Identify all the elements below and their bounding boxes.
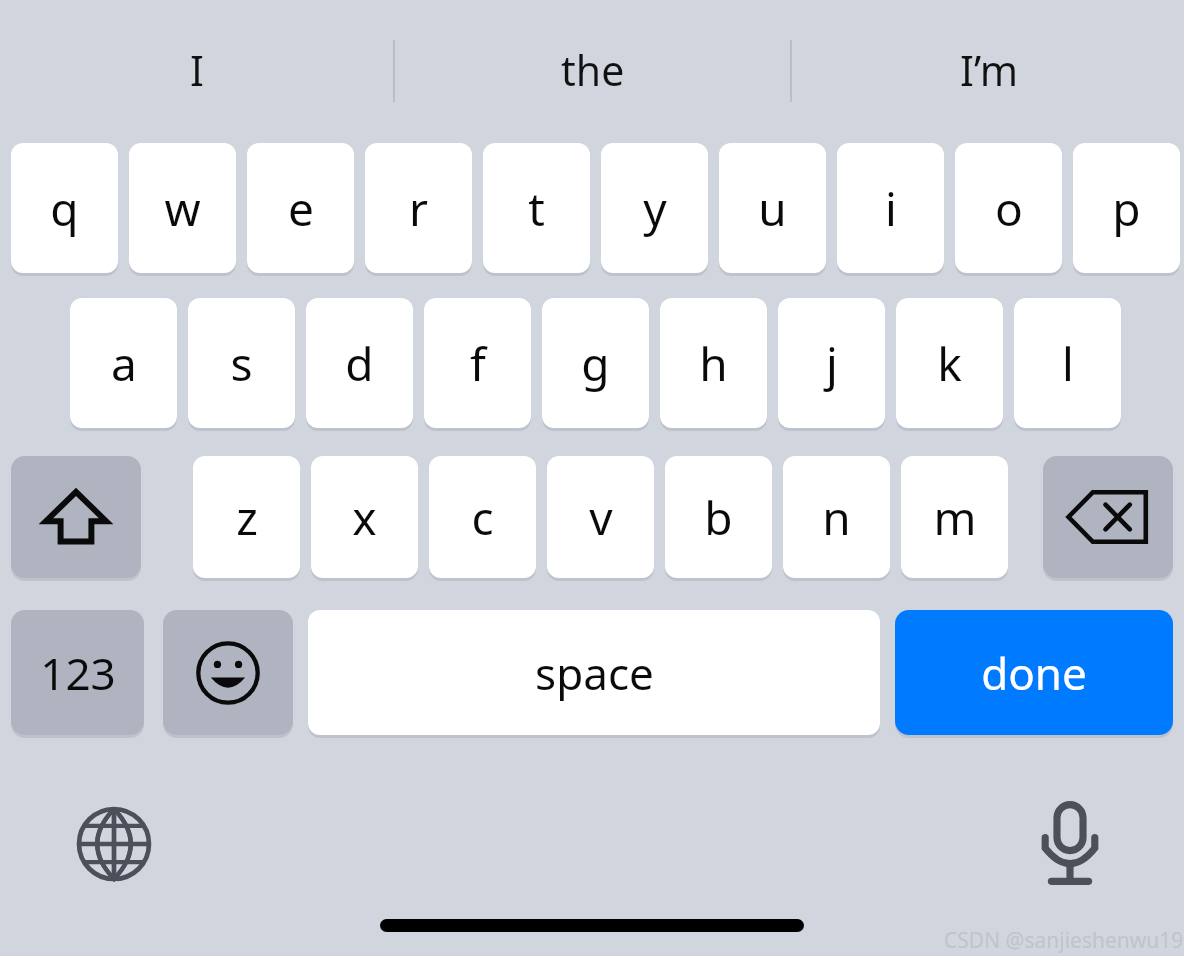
button[interactable]: t <box>483 143 590 273</box>
staticText: y <box>643 177 667 240</box>
staticText: f <box>470 332 486 395</box>
button[interactable]: z <box>193 456 300 578</box>
button[interactable]: space <box>308 610 880 735</box>
staticText: i <box>885 177 897 240</box>
staticText: v <box>589 486 613 549</box>
staticText: h <box>699 332 728 395</box>
staticText: 123 <box>40 643 116 703</box>
button[interactable]: Shift <box>11 456 141 578</box>
button[interactable]: j <box>778 298 885 428</box>
button[interactable]: d <box>306 298 413 428</box>
staticText: done <box>981 643 1087 703</box>
staticText: p <box>1112 177 1141 240</box>
button[interactable]: n <box>783 456 890 578</box>
staticText: b <box>704 486 733 549</box>
staticText: o <box>995 177 1023 240</box>
staticText: c <box>471 486 494 549</box>
staticText: z <box>236 486 258 549</box>
staticText: w <box>164 177 201 240</box>
button[interactable]: y <box>601 143 708 273</box>
staticText: CSDN @sanjieshenwu1987 <box>944 926 1184 955</box>
button[interactable]: b <box>665 456 772 578</box>
button[interactable]: o <box>955 143 1062 273</box>
staticText: n <box>822 486 851 549</box>
staticText: r <box>409 177 428 240</box>
button[interactable]: e <box>247 143 354 273</box>
button[interactable]: I <box>27 24 367 116</box>
button[interactable]: w <box>129 143 236 273</box>
button[interactable]: f <box>424 298 531 428</box>
button[interactable]: Backspace <box>1043 456 1173 578</box>
button[interactable]: g <box>542 298 649 428</box>
button[interactable]: Emoji <box>163 610 293 735</box>
staticText: q <box>50 177 79 240</box>
button[interactable]: q <box>11 143 118 273</box>
button[interactable]: v <box>547 456 654 578</box>
staticText: I <box>190 42 204 98</box>
staticText: the <box>561 42 625 98</box>
button[interactable]: l <box>1014 298 1121 428</box>
staticText: j <box>826 332 838 395</box>
button[interactable]: Switch keyboard <box>62 792 166 896</box>
button[interactable]: Dictation <box>1018 792 1122 896</box>
button[interactable]: done <box>895 610 1173 735</box>
button[interactable]: s <box>188 298 295 428</box>
button[interactable]: 123 <box>11 610 144 735</box>
button[interactable]: i <box>837 143 944 273</box>
staticText: u <box>758 177 787 240</box>
button[interactable]: x <box>311 456 418 578</box>
staticText: a <box>111 332 137 395</box>
staticText: I’m <box>960 42 1019 98</box>
staticText: d <box>345 332 374 395</box>
staticText: x <box>352 486 377 549</box>
staticText: l <box>1062 332 1074 395</box>
button[interactable]: u <box>719 143 826 273</box>
button[interactable]: c <box>429 456 536 578</box>
button[interactable]: I’m <box>819 24 1159 116</box>
staticText: space <box>535 643 654 703</box>
staticText: e <box>288 177 314 240</box>
staticText: k <box>937 332 962 395</box>
staticText: t <box>528 177 545 240</box>
staticText: s <box>230 332 253 395</box>
button[interactable]: k <box>896 298 1003 428</box>
staticText: g <box>581 332 610 395</box>
button[interactable]: p <box>1073 143 1180 273</box>
button[interactable]: h <box>660 298 767 428</box>
button[interactable]: the <box>423 24 763 116</box>
button[interactable]: a <box>70 298 177 428</box>
button[interactable]: r <box>365 143 472 273</box>
staticText: m <box>933 486 977 549</box>
button[interactable]: m <box>901 456 1008 578</box>
